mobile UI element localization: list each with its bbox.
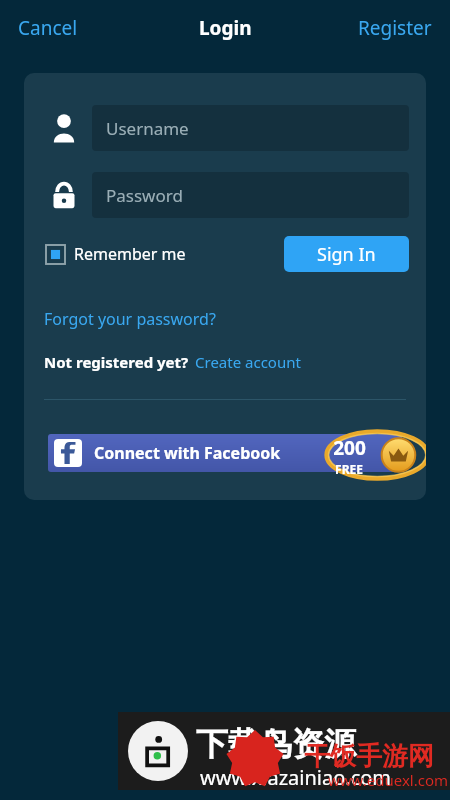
staticText: Password (106, 184, 183, 207)
staticText: Not registered yet? (44, 352, 189, 372)
button[interactable]: Password (92, 172, 409, 218)
other: 200 free coins bonus (320, 427, 426, 483)
staticText: www.xiazainiao.com (200, 764, 392, 791)
staticText: www.eduexl.com (328, 770, 449, 790)
button[interactable]: Remember me (44, 239, 188, 269)
staticText: Connect with Facebook (94, 442, 281, 464)
staticText: 干饭手游网 (304, 740, 434, 773)
staticText: Register (358, 15, 432, 41)
staticText: Create account (195, 352, 301, 372)
staticText: Login (199, 15, 252, 41)
button[interactable]: Sign In (284, 236, 409, 272)
staticText: Sign In (317, 242, 376, 267)
button[interactable]: Username (92, 105, 409, 151)
staticText: 200 (333, 435, 366, 461)
button[interactable]: Create account (195, 349, 301, 375)
button[interactable]: Cancel (10, 9, 86, 47)
staticText: 下载鸟资源 (196, 724, 356, 764)
staticText: Remember me (74, 243, 186, 265)
button[interactable]: Register (350, 9, 440, 47)
staticText: Forgot your password? (44, 308, 216, 330)
staticText: Cancel (18, 15, 78, 41)
staticText: Username (106, 117, 189, 140)
button[interactable]: Forgot your password? (44, 305, 216, 333)
staticText: FREE (335, 461, 363, 477)
button[interactable]: Connect with Facebook (48, 434, 402, 472)
